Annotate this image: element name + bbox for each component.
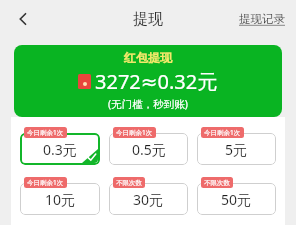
button[interactable]: 50元 [197, 177, 276, 215]
button[interactable]: 5元 [197, 127, 276, 165]
staticText: 不限次数 [204, 179, 230, 187]
button[interactable]: 10元 [20, 177, 100, 215]
staticText: 今日剩余1次 [27, 128, 64, 137]
staticText: 3272≈0.32元 [95, 68, 218, 95]
staticText: 0.3元 [43, 140, 77, 159]
staticText: 50元 [221, 190, 252, 209]
staticText: 提现记录 [239, 12, 285, 26]
staticText: 不限次数 [116, 179, 142, 187]
staticText: 提现 [133, 10, 163, 29]
staticText: 今日剩余1次 [27, 178, 64, 187]
staticText: 0.5元 [132, 140, 166, 159]
button[interactable]: 0.3元 [20, 127, 100, 165]
staticText: 红包提现 [124, 50, 172, 65]
staticText: (无门槛，秒到账) [108, 97, 188, 111]
staticText: 5元 [225, 140, 248, 159]
staticText: 今日剩余1次 [116, 128, 153, 137]
button[interactable]: 0.5元 [109, 127, 188, 165]
button[interactable]: Back [6, 2, 40, 36]
button[interactable]: 30元 [109, 177, 188, 215]
staticText: 今日剩余1次 [204, 128, 241, 137]
button[interactable]: 提现记录 [237, 8, 287, 30]
staticText: 10元 [45, 190, 76, 209]
staticText: 30元 [133, 190, 164, 209]
